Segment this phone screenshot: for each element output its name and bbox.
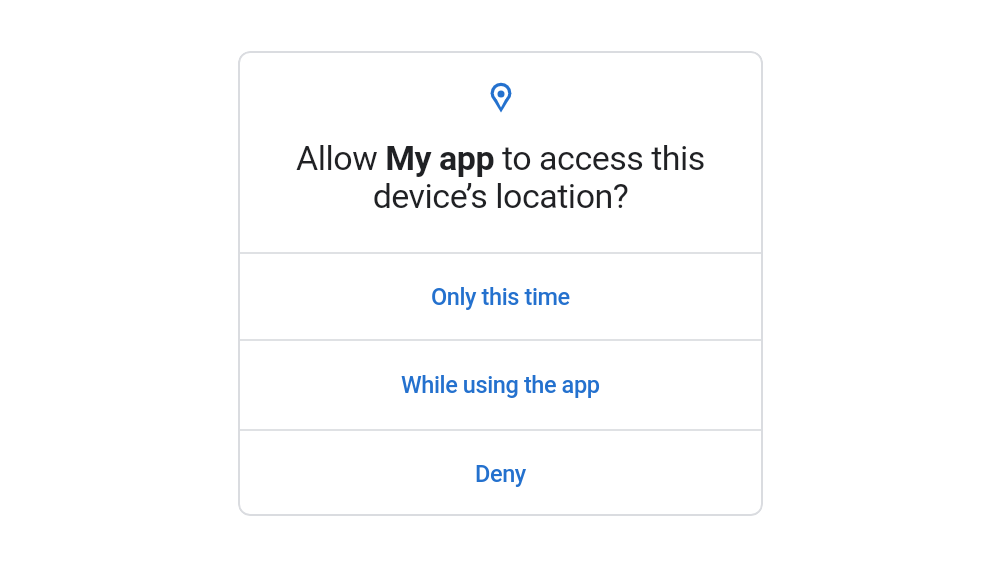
button[interactable]: While using the app <box>238 341 763 429</box>
staticText: Only this time <box>431 283 570 311</box>
staticText: Allow My app to access this device’s loc… <box>238 138 763 217</box>
staticText: While using the app <box>401 371 600 399</box>
button[interactable]: Deny <box>238 431 763 516</box>
staticText: Deny <box>475 460 526 488</box>
button[interactable]: Only this time <box>238 254 763 339</box>
